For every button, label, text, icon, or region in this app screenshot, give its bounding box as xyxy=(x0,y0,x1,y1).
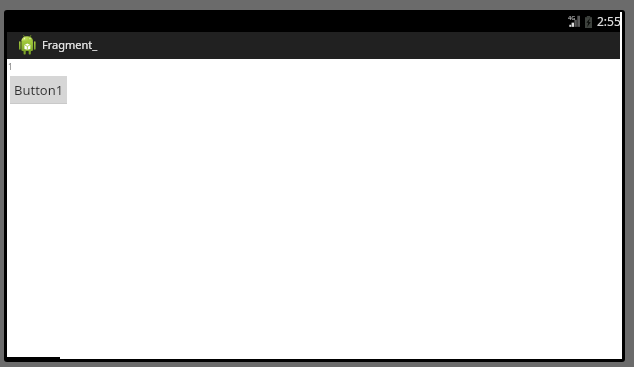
staticText: 1 xyxy=(8,61,13,72)
staticText: Fragment_ xyxy=(42,37,98,52)
button[interactable]: App icon xyxy=(7,32,107,59)
other: App icon xyxy=(19,35,36,55)
staticText: 2:55 xyxy=(597,13,621,29)
staticText: 4G xyxy=(568,14,576,22)
staticText: Button1 xyxy=(14,81,64,99)
button[interactable]: Button1 xyxy=(10,76,67,104)
